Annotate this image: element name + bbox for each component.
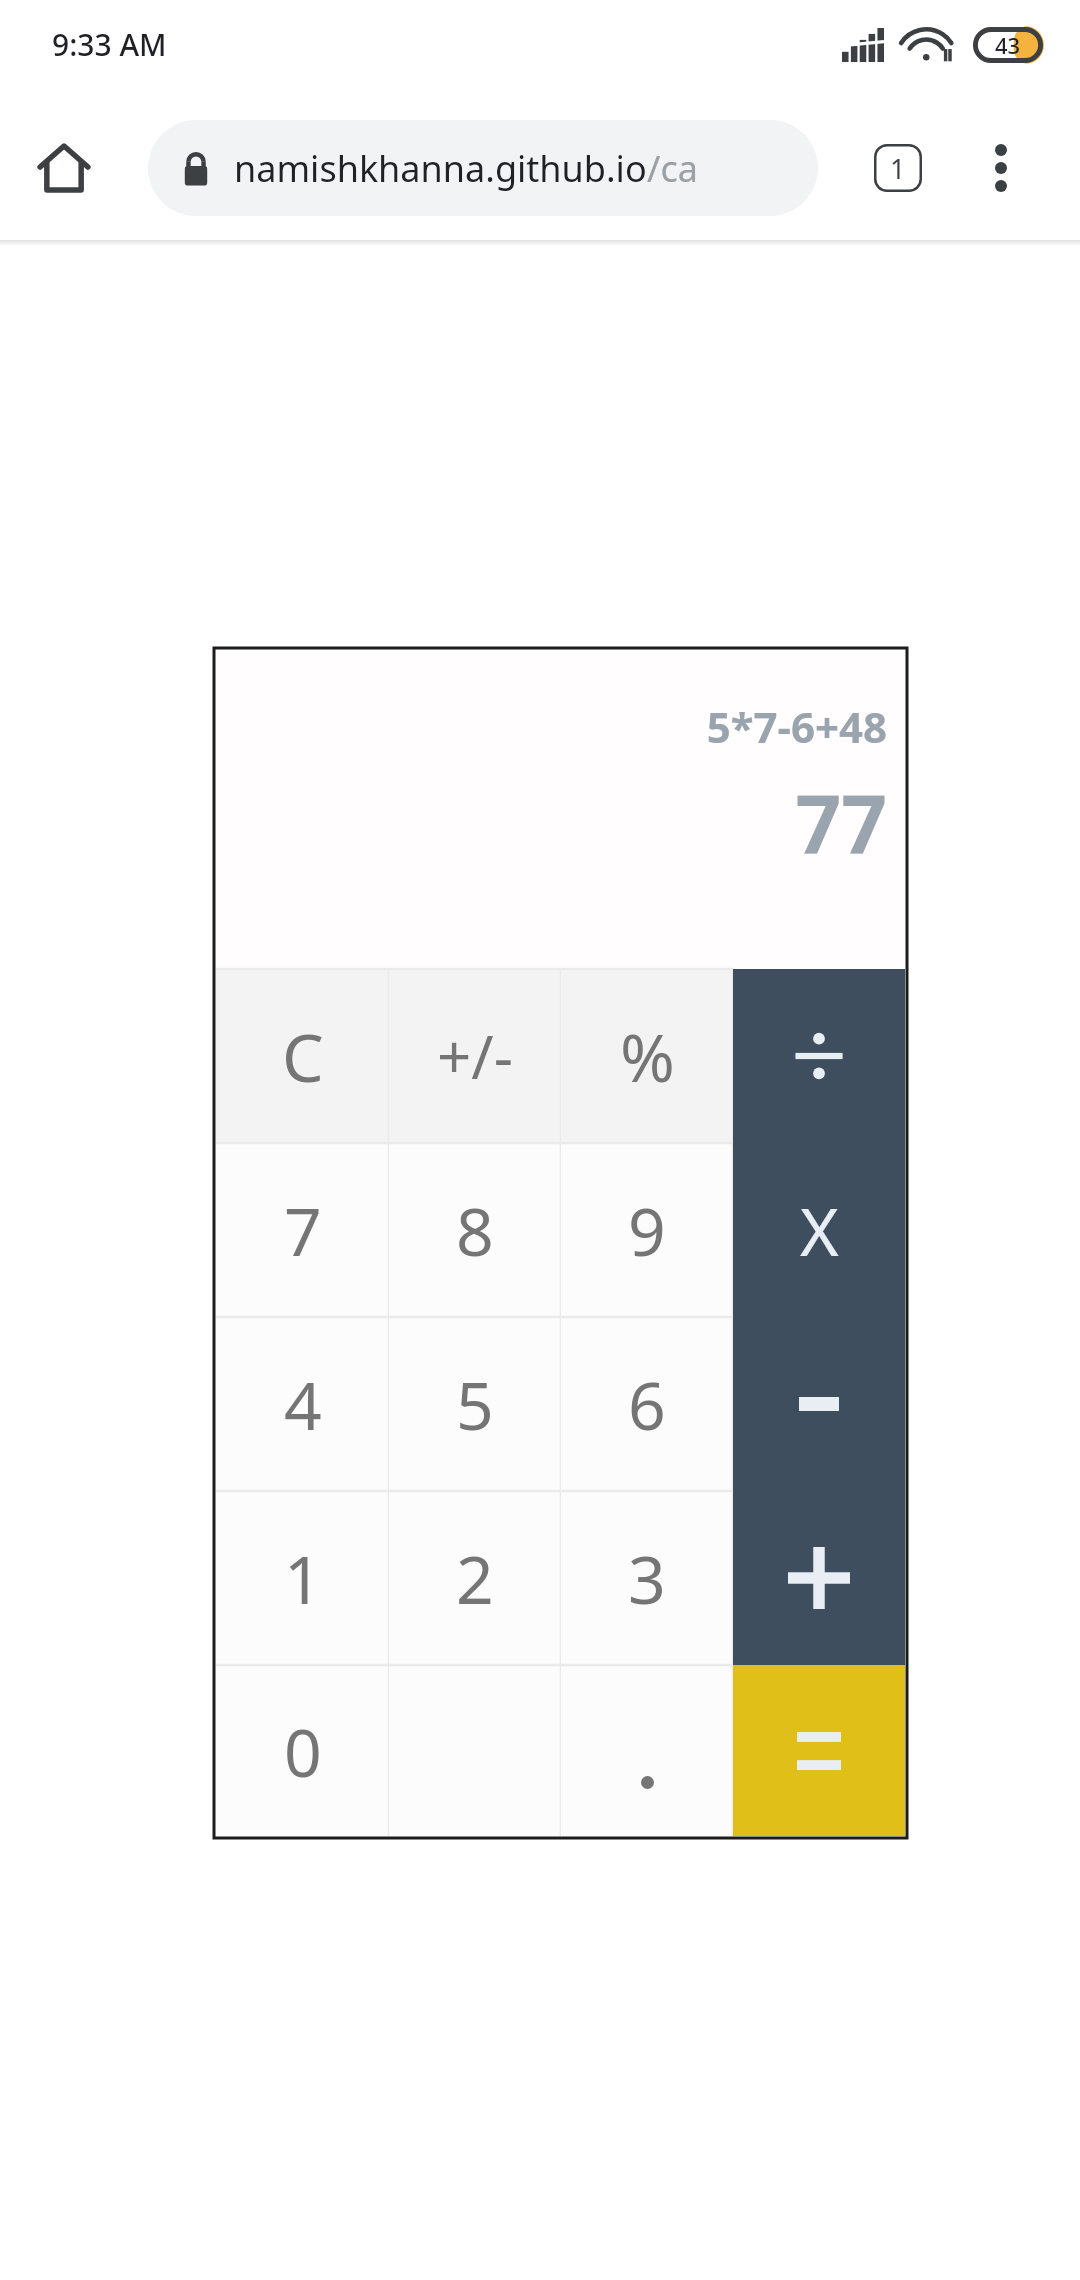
staticText: 0 bbox=[284, 1706, 322, 1796]
button[interactable]: C bbox=[216, 969, 389, 1143]
button[interactable]: 6 bbox=[561, 1317, 733, 1491]
button[interactable]: 8 bbox=[389, 1143, 561, 1317]
staticText: 8 bbox=[456, 1185, 494, 1275]
button[interactable] bbox=[561, 1665, 733, 1836]
staticText: 4 bbox=[284, 1359, 322, 1449]
staticText: 1 bbox=[890, 150, 906, 187]
button[interactable]: % bbox=[561, 969, 733, 1143]
staticText: 5 bbox=[456, 1359, 494, 1449]
button[interactable]: 3 bbox=[561, 1491, 733, 1665]
staticText: C bbox=[282, 1011, 324, 1101]
staticText: /ca bbox=[647, 144, 698, 193]
button[interactable]: Subtract bbox=[733, 1317, 905, 1491]
button[interactable]: Home bbox=[18, 122, 110, 214]
button[interactable]: Add bbox=[733, 1491, 905, 1665]
button[interactable]: 1 bbox=[216, 1491, 389, 1665]
staticText: 5*7-6+48 bbox=[706, 698, 887, 755]
button[interactable]: 9 bbox=[561, 1143, 733, 1317]
staticText: 9:33 AM bbox=[52, 24, 167, 65]
button[interactable]: Multiply bbox=[733, 1143, 905, 1317]
staticText: namishkhanna.github.io bbox=[234, 144, 647, 193]
staticText: 43 bbox=[995, 30, 1021, 60]
staticText: +/- bbox=[437, 1015, 513, 1097]
button[interactable]: 4 bbox=[216, 1317, 389, 1491]
button[interactable]: 0 bbox=[216, 1665, 389, 1836]
button[interactable]: More options bbox=[955, 122, 1047, 214]
button[interactable]: 5 bbox=[389, 1317, 561, 1491]
button[interactable]: namishkhanna.github.io bbox=[148, 120, 818, 216]
staticText: 3 bbox=[628, 1533, 666, 1623]
button[interactable]: 2 bbox=[389, 1491, 561, 1665]
staticText: 77 bbox=[795, 768, 887, 877]
button[interactable]: Divide bbox=[733, 969, 905, 1143]
staticText: 1 bbox=[284, 1533, 322, 1623]
staticText: 2 bbox=[456, 1533, 494, 1623]
staticText: 6 bbox=[628, 1359, 666, 1449]
staticText: % bbox=[620, 1011, 675, 1101]
staticText: 9 bbox=[628, 1185, 666, 1275]
button[interactable]: Tabs, 1 open bbox=[852, 122, 944, 214]
staticText: 7 bbox=[284, 1185, 322, 1275]
staticText: X bbox=[800, 1185, 839, 1275]
button[interactable]: Equals bbox=[733, 1665, 905, 1836]
button[interactable]: +/- bbox=[389, 969, 561, 1143]
button[interactable]: 7 bbox=[216, 1143, 389, 1317]
